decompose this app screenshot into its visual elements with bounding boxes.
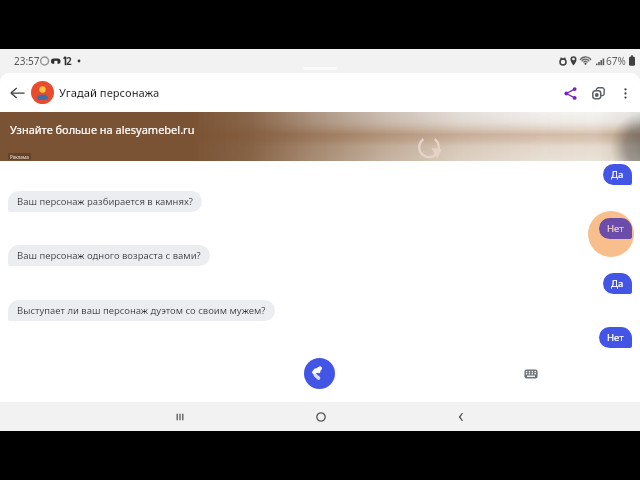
button[interactable]: Ваш персонаж разбирается в камнях? [8, 191, 202, 212]
button[interactable]: Share [554, 77, 586, 109]
staticText: Узнайте больше на alesyamebel.ru [10, 122, 195, 137]
staticText: Реклама [10, 154, 29, 160]
staticText: Да [611, 168, 624, 181]
staticText: 67% [606, 54, 626, 68]
staticText: Да [611, 277, 624, 290]
button[interactable]: Back [441, 402, 481, 431]
button[interactable]: Выступает ли ваш персонаж дуэтом со свои… [8, 300, 275, 321]
button[interactable]: Keyboard [521, 364, 541, 384]
staticText: Ваш персонаж разбирается в камнях? [17, 195, 193, 208]
button[interactable]: Home [301, 402, 341, 431]
staticText: Выступает ли ваш персонаж дуэтом со свои… [17, 304, 266, 317]
button[interactable]: Screenshot [582, 77, 614, 109]
button[interactable]: Hint [304, 358, 335, 389]
button[interactable]: More options [611, 79, 639, 107]
button[interactable]: Back [1, 77, 33, 109]
staticText: 2 [66, 54, 72, 68]
button[interactable]: Ваш персонаж одного возраста с вами? [8, 245, 210, 266]
button[interactable]: Да [603, 273, 632, 294]
button[interactable]: Да [603, 164, 632, 185]
staticText: Угадай персонажа [59, 85, 160, 100]
button[interactable]: Нет [599, 327, 632, 348]
staticText: Нет [607, 331, 624, 344]
button[interactable]: Узнайте больше на alesyamebel.ru [0, 112, 640, 161]
staticText: Нет [607, 222, 624, 235]
staticText: Ваш персонаж одного возраста с вами? [17, 249, 201, 262]
button[interactable]: Recents [160, 402, 200, 431]
staticText: 23:57 [14, 54, 40, 68]
button[interactable]: Угадай персонажа [31, 73, 160, 112]
button[interactable]: Нет [599, 218, 632, 239]
